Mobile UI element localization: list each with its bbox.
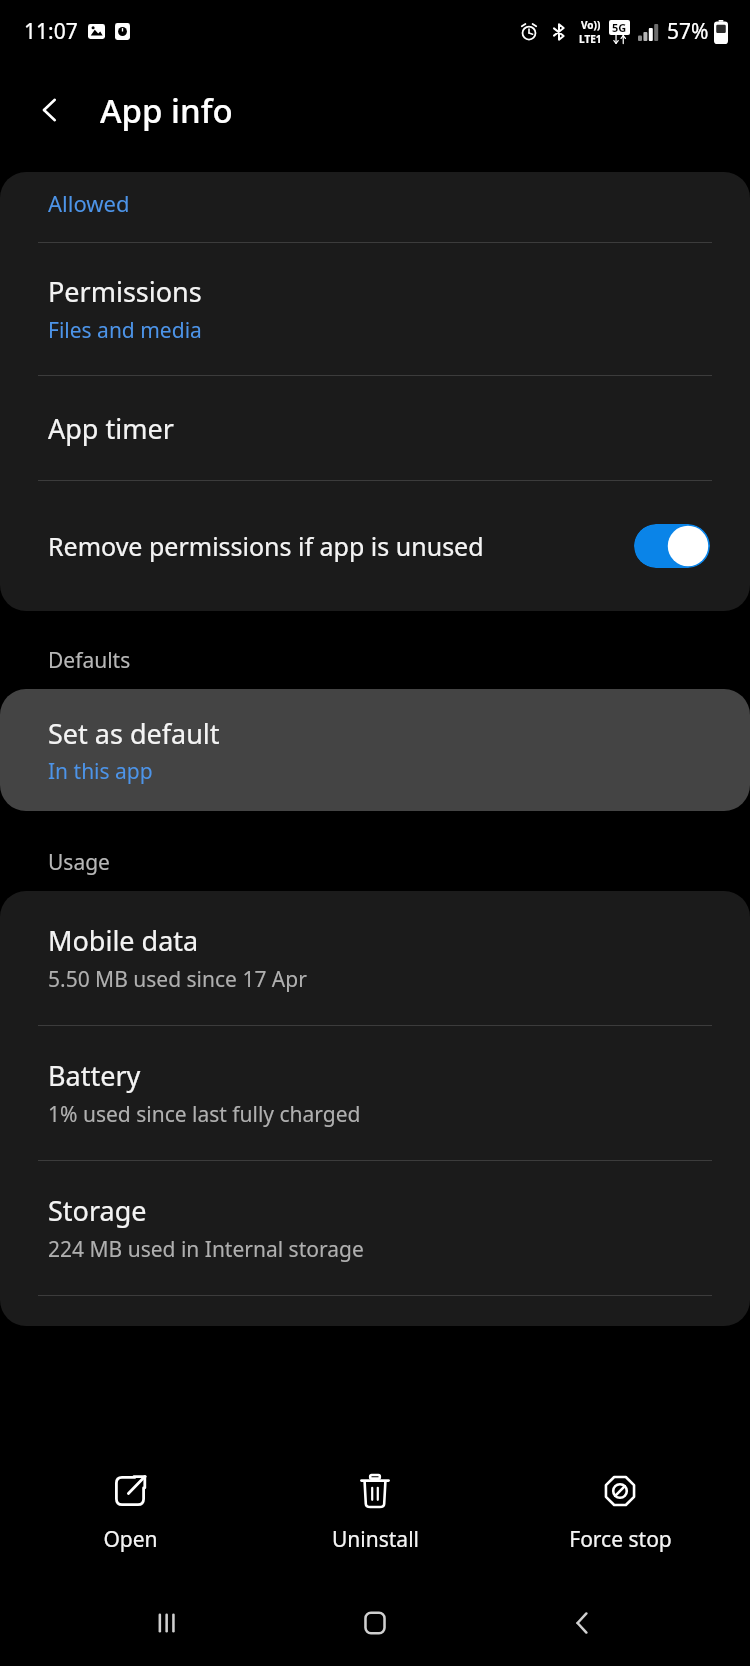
staticText: Storage: [48, 1192, 147, 1229]
staticText: Remove permissions if app is unused: [48, 529, 488, 563]
staticText: In this app: [48, 757, 153, 786]
staticText: Mobile data: [48, 922, 199, 959]
button[interactable]: Battery: [0, 1026, 750, 1160]
button[interactable]: Recents: [128, 1583, 208, 1663]
button[interactable]: Mobile data: [0, 891, 750, 1025]
staticText: 1% used since last fully charged: [48, 1100, 361, 1129]
button[interactable]: Remove permissions if app is unused: [0, 481, 750, 611]
staticText: Vo)): [581, 18, 601, 32]
staticText: Permissions: [48, 273, 202, 310]
staticText: 5G: [612, 20, 627, 35]
staticText: Open: [103, 1525, 158, 1554]
staticText: 11:07: [24, 17, 78, 46]
staticText: Force stop: [569, 1525, 672, 1554]
button[interactable]: Uninstall: [260, 1444, 490, 1580]
button[interactable]: Allowed: [0, 172, 750, 242]
staticText: Uninstall: [332, 1525, 419, 1554]
button[interactable]: Back: [22, 82, 78, 138]
staticText: Usage: [48, 848, 110, 877]
button[interactable]: Back: [543, 1583, 623, 1663]
staticText: 57%: [667, 17, 709, 46]
button[interactable]: Home: [335, 1583, 415, 1663]
staticText: Allowed: [48, 188, 130, 218]
staticText: Files and media: [48, 316, 202, 345]
button[interactable]: Set as default: [0, 689, 750, 811]
button[interactable]: Permissions: [0, 243, 750, 375]
staticText: App info: [100, 88, 233, 133]
button[interactable]: Storage: [0, 1161, 750, 1295]
staticText: Battery: [48, 1057, 141, 1094]
staticText: Defaults: [48, 646, 131, 675]
staticText: 224 MB used in Internal storage: [48, 1235, 364, 1264]
staticText: LTE1: [579, 32, 602, 46]
staticText: Set as default: [48, 715, 220, 752]
button[interactable]: App timer: [0, 376, 750, 480]
button[interactable]: Open: [15, 1444, 245, 1580]
button[interactable]: Force stop: [505, 1444, 735, 1580]
button[interactable]: Remove permissions toggle: [634, 524, 710, 568]
staticText: 5.50 MB used since 17 Apr: [48, 965, 307, 994]
staticText: App timer: [48, 410, 174, 447]
